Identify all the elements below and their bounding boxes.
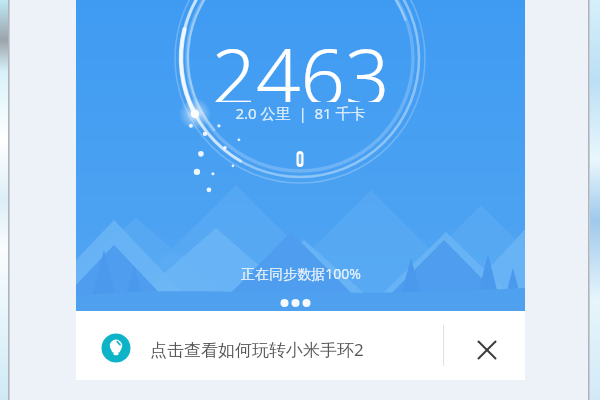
button[interactable]: Steps [180,0,420,180]
staticText: 点击查看如何玩转小米手环2 [150,338,364,361]
button[interactable] [76,311,443,380]
button[interactable]: Close [444,311,525,380]
staticText: 正在同步数据100% [241,264,361,283]
staticText: 2463 [211,22,390,102]
staticText: 2.0 公里 | 81 千卡 [235,103,366,123]
